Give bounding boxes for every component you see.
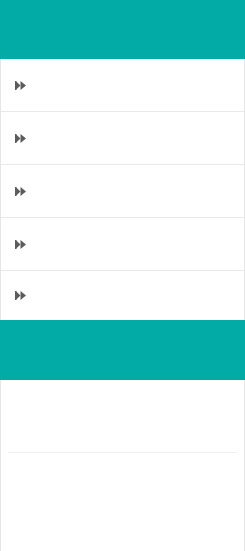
button[interactable]: Play item 1	[0, 59, 245, 111]
button[interactable]: Play item 3	[0, 165, 245, 217]
button[interactable]: Play item 4	[0, 218, 245, 270]
button[interactable]: Play item 5	[0, 271, 245, 320]
button[interactable]: Play item 2	[0, 112, 245, 164]
